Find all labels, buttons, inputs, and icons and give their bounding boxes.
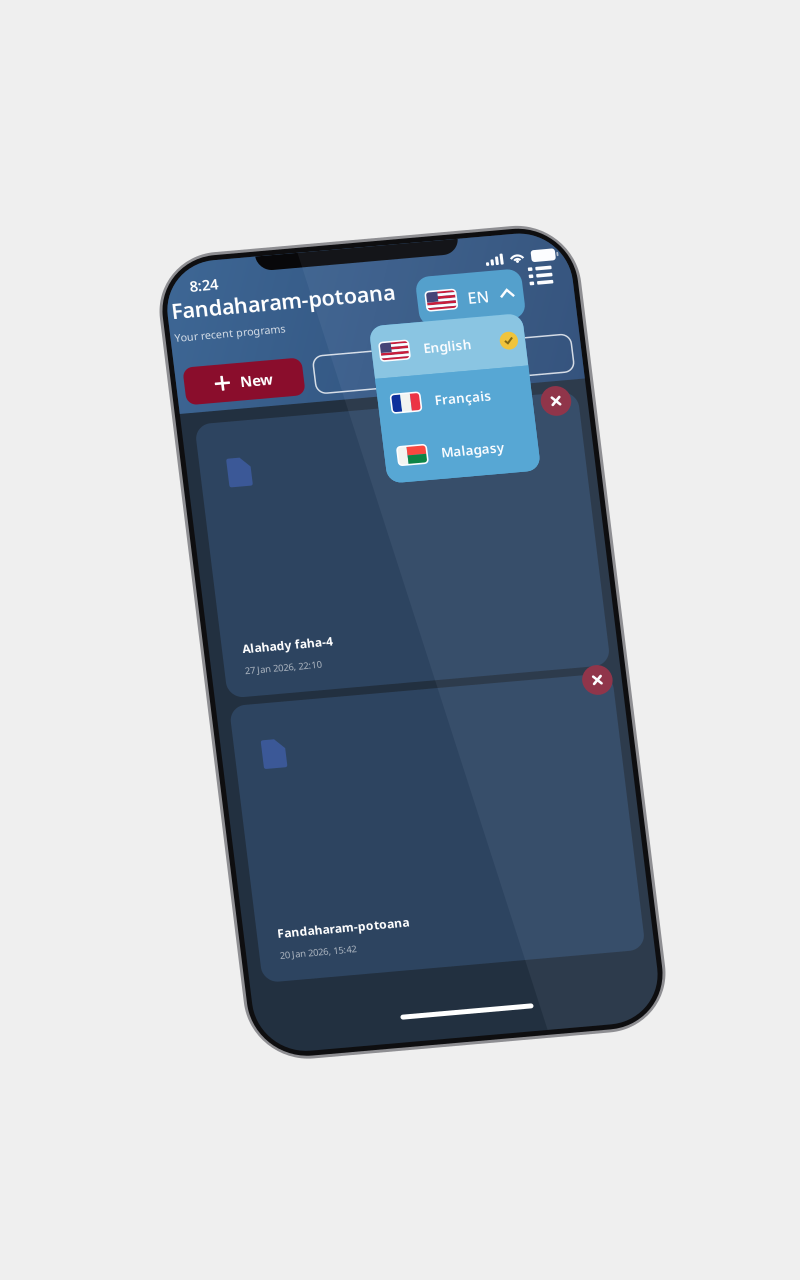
- button[interactable]: Alahady faha-4: [13, 163, 393, 440]
- button[interactable]: Fandaharam-potoana: [13, 448, 393, 728]
- button[interactable]: Delete program: [363, 439, 393, 469]
